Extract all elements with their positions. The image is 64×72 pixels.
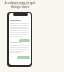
staticText: A calmer way to get things done — [4, 1, 36, 8]
button[interactable]: Reply — [19, 39, 30, 42]
staticText: INTRODUCING — [5, 2, 35, 5]
button[interactable]: Send — [17, 56, 30, 59]
